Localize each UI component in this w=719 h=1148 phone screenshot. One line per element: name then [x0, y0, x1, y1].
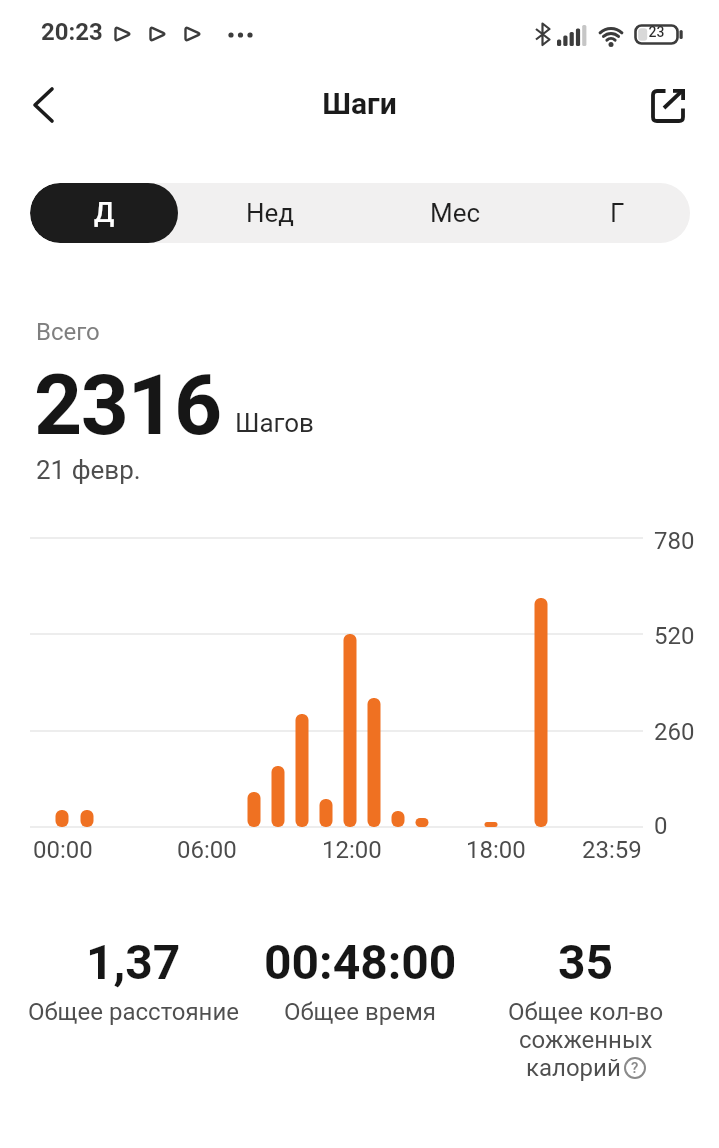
staticText: 23:59	[582, 836, 642, 864]
staticText: Всего	[36, 318, 100, 346]
staticText: 18:00	[466, 836, 526, 864]
button[interactable]	[640, 78, 696, 134]
button[interactable]: ?	[623, 1056, 647, 1080]
staticText: Д	[94, 197, 115, 229]
button[interactable]: Г	[567, 183, 667, 243]
staticText: 1,37	[86, 934, 181, 990]
staticText: Общее расстояние	[28, 998, 239, 1026]
staticText: 520	[654, 622, 695, 650]
button[interactable]	[18, 80, 68, 130]
staticText: Шаги	[0, 86, 719, 121]
button[interactable]: Д	[30, 183, 178, 243]
staticText: 2316	[34, 356, 221, 454]
staticText: Нед	[246, 198, 295, 228]
staticText: сожженных	[519, 1026, 653, 1054]
button[interactable]: Нед	[220, 183, 320, 243]
staticText: Общее время	[284, 998, 436, 1026]
staticText: 35	[558, 934, 614, 990]
staticText: 00:48:00	[264, 934, 457, 990]
staticText: 00:00	[33, 836, 93, 864]
staticText: 20:23	[41, 18, 103, 46]
staticText: калорий	[526, 1054, 621, 1082]
staticText: 0	[654, 812, 668, 840]
staticText: ?	[631, 1059, 639, 1077]
staticText: 12:00	[322, 836, 382, 864]
staticText: Мес	[430, 198, 481, 228]
staticText: 06:00	[177, 836, 237, 864]
staticText: 260	[654, 718, 695, 746]
button[interactable]: Мес	[405, 183, 505, 243]
staticText: Шагов	[235, 408, 314, 438]
staticText: 21 февр.	[36, 455, 141, 485]
staticText: Общее кол-во	[508, 998, 664, 1026]
staticText: 23	[634, 24, 679, 45]
staticText: Г	[610, 198, 625, 228]
staticText: 780	[654, 527, 695, 555]
